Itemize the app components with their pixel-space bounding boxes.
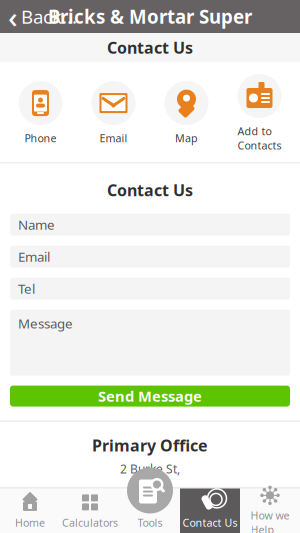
button[interactable]: How we Help	[240, 488, 300, 533]
button[interactable]: Email	[10, 246, 290, 268]
staticText: Name	[18, 216, 55, 233]
staticText: Email	[18, 248, 50, 265]
staticText: Tools	[137, 515, 162, 530]
button[interactable]: Email	[77, 81, 150, 145]
button[interactable]: Contact Us	[180, 488, 240, 533]
button[interactable]: Name	[10, 214, 290, 236]
staticText: Back...	[21, 4, 77, 29]
staticText: Send Message	[98, 386, 202, 406]
staticText: How we Help	[250, 508, 289, 533]
button[interactable]: Phone	[4, 81, 77, 145]
staticText: ‹	[8, 0, 18, 36]
staticText: Phone	[24, 131, 56, 145]
staticText: Message	[18, 315, 73, 332]
button[interactable]: Add to Contacts	[223, 74, 296, 152]
staticText: Contact Us	[182, 515, 237, 530]
button[interactable]: Tel	[10, 278, 290, 300]
button[interactable]: Map	[150, 81, 223, 145]
staticText: Contact Us	[107, 37, 193, 58]
staticText: Map	[175, 131, 198, 145]
button[interactable]: Calculators	[60, 488, 120, 533]
staticText: Primary Office	[92, 435, 208, 456]
button[interactable]: Tools	[127, 467, 173, 513]
staticText: 2 Burke St,	[120, 461, 180, 477]
button[interactable]: Send Message	[10, 386, 290, 407]
staticText: Email	[99, 131, 127, 145]
button[interactable]: Home	[0, 488, 60, 533]
staticText: Home	[15, 515, 45, 530]
staticText: Add to Contacts	[237, 124, 281, 152]
staticText: Bricks & Mortar Super	[48, 4, 252, 29]
button[interactable]: Message	[10, 310, 290, 376]
staticText: Calculators	[62, 515, 118, 530]
button[interactable]: Tools	[120, 488, 180, 533]
staticText: Tel	[18, 280, 35, 297]
button[interactable]: ‹	[0, 0, 85, 33]
staticText: Contact Us	[107, 179, 193, 200]
